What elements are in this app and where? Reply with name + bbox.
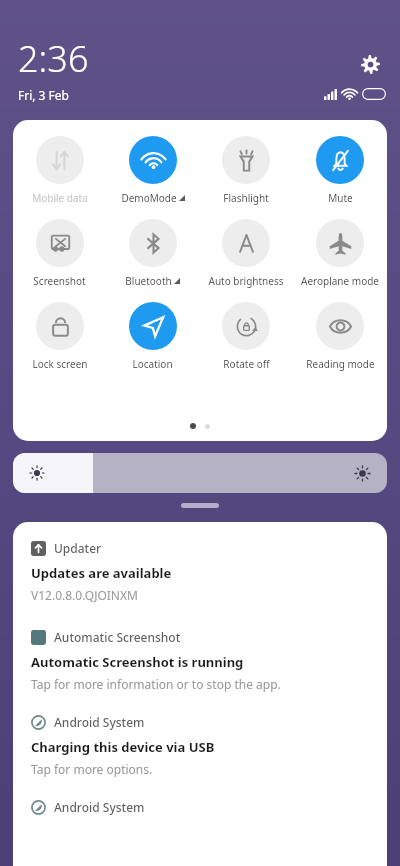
button[interactable]: Aeroplane mode (293, 217, 387, 290)
button[interactable]: Mute (293, 134, 387, 207)
staticText: Screenshot (33, 274, 86, 288)
button[interactable]: Automatic Screenshot (31, 629, 369, 692)
staticText: Tap for more options. (31, 761, 153, 777)
button[interactable]: Flashlight (199, 134, 293, 207)
button[interactable]: Android System (31, 714, 369, 777)
staticText: Updates are available (31, 564, 172, 582)
button[interactable]: Bluetooth (106, 217, 199, 290)
staticText: Automatic Screenshot (54, 629, 181, 645)
staticText: Flashlight (223, 191, 269, 205)
button[interactable]: Brightness (13, 453, 387, 493)
staticText: Reading mode (306, 357, 375, 371)
staticText: Automatic Screenshot is running (31, 653, 244, 671)
staticText: 2:36 (18, 34, 89, 83)
button[interactable]: Rotate off (199, 300, 293, 373)
button[interactable]: Mobile data (13, 134, 106, 207)
staticText: DemoMode (121, 191, 177, 205)
staticText: V12.0.8.0.QJOINXM (31, 587, 138, 603)
button[interactable]: Location (106, 300, 199, 373)
staticText: Fri, 3 Feb (18, 87, 69, 103)
staticText: Auto brightness (208, 274, 284, 288)
staticText: Aeroplane mode (301, 274, 379, 288)
staticText: Mute (328, 191, 353, 205)
staticText: Location (132, 357, 173, 371)
staticText: Android System (54, 714, 145, 730)
staticText: Charging this device via USB (31, 738, 215, 756)
button[interactable]: Auto brightness (199, 217, 293, 290)
staticText: Android System (54, 799, 145, 815)
staticText: Rotate off (223, 357, 270, 371)
staticText: Updater (54, 540, 102, 556)
button[interactable]: Screenshot (13, 217, 106, 290)
button[interactable]: Lock screen (13, 300, 106, 373)
staticText: Lock screen (32, 357, 88, 371)
button[interactable]: Settings (354, 48, 386, 80)
staticText: Tap for more information or to stop the … (31, 676, 281, 692)
button[interactable]: DemoMode (106, 134, 199, 207)
staticText: Mobile data (32, 191, 88, 205)
staticText: Bluetooth (125, 274, 172, 288)
button[interactable]: Reading mode (293, 300, 387, 373)
button[interactable]: Updater (31, 540, 369, 603)
